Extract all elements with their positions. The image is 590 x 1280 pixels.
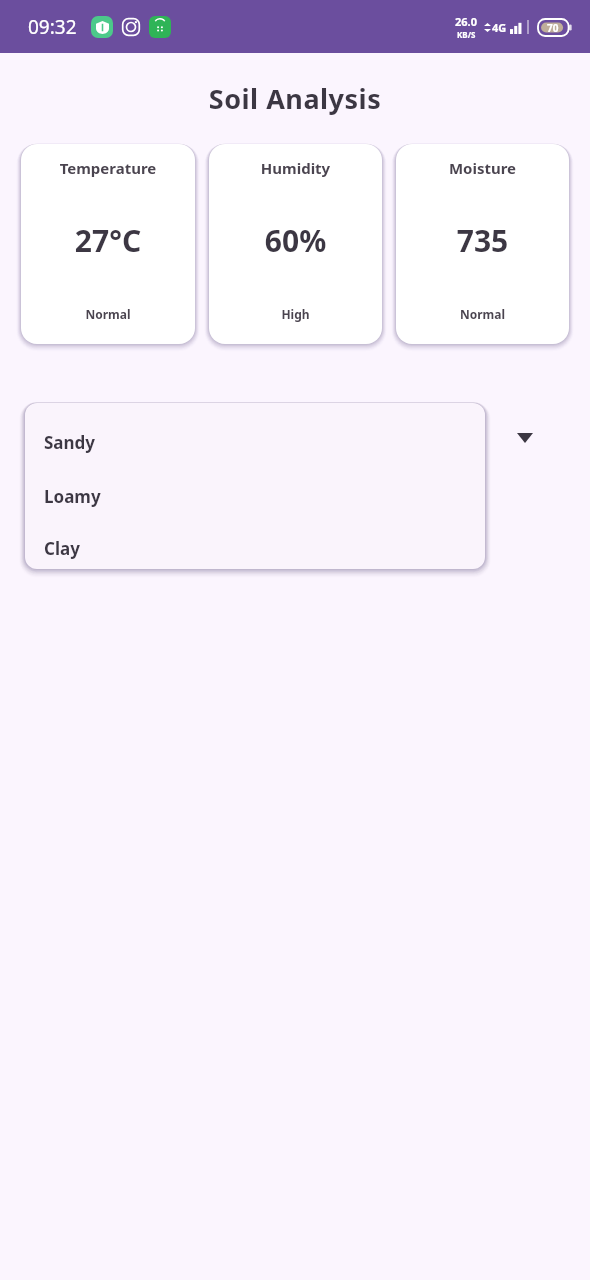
staticText: Normal xyxy=(27,306,189,322)
staticText: 26.0 xyxy=(455,14,477,29)
button[interactable]: Clay xyxy=(25,528,485,569)
button[interactable]: Loamy xyxy=(25,474,485,519)
button[interactable]: Sandy xyxy=(25,420,485,465)
button[interactable]: Humidity xyxy=(209,144,382,344)
staticText: Temperature xyxy=(27,158,189,178)
staticText: 4G xyxy=(492,20,507,35)
staticText: 735 xyxy=(402,220,563,261)
staticText: Clay xyxy=(44,537,80,560)
staticText: Soil Analysis xyxy=(0,80,590,117)
staticText: 09:32 xyxy=(28,14,77,40)
staticText: Normal xyxy=(402,306,563,322)
staticText: 70 xyxy=(547,21,559,35)
staticText: 27°C xyxy=(27,220,189,261)
staticText: Sandy xyxy=(44,431,96,454)
staticText: KB/S xyxy=(457,29,476,40)
button[interactable]: Temperature xyxy=(21,144,195,344)
staticText: High xyxy=(215,306,376,322)
button[interactable]: Select soil type xyxy=(505,418,545,458)
button[interactable]: Moisture xyxy=(396,144,569,344)
staticText: Loamy xyxy=(44,485,101,508)
staticText: Humidity xyxy=(215,158,376,178)
staticText: Moisture xyxy=(402,158,563,178)
staticText: 60% xyxy=(215,220,376,261)
